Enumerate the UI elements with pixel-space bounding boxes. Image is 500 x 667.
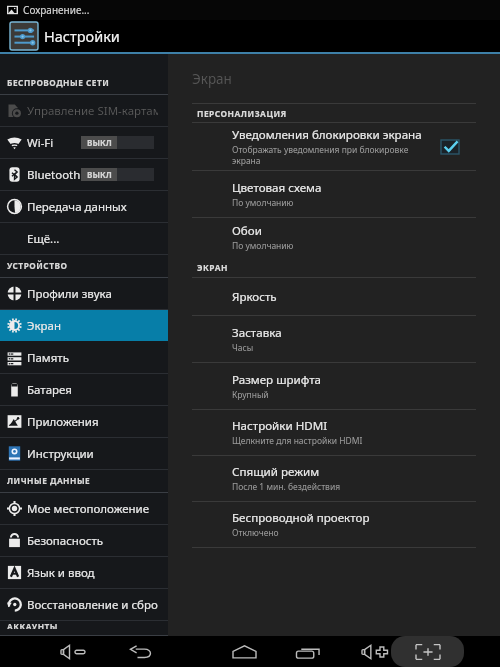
staticText: Сохранение... <box>23 3 90 17</box>
staticText: Передача данных <box>27 199 158 215</box>
button[interactable]: Screenshot <box>391 636 464 667</box>
staticText: Заставка <box>232 325 282 341</box>
staticText: Спящий режим <box>232 464 320 480</box>
button[interactable]: Обои <box>168 218 500 257</box>
button[interactable]: Память <box>0 342 168 374</box>
button[interactable]: Home <box>222 636 267 667</box>
staticText: Отображать уведомления при блокировке эк… <box>232 144 409 166</box>
staticText: По умолчанию <box>232 197 294 209</box>
staticText: ВЫКЛ <box>87 169 112 180</box>
staticText: Обои <box>232 223 262 239</box>
button[interactable]: Профили звука <box>0 278 168 310</box>
button[interactable]: Передача данных <box>0 191 168 223</box>
staticText: Настройки HDMI <box>232 418 328 434</box>
button[interactable]: Батарея <box>0 374 168 406</box>
button[interactable]: Recent apps <box>286 636 330 667</box>
staticText: Wi-Fi <box>27 135 158 151</box>
staticText: Размер шрифта <box>232 372 322 388</box>
staticText: Восстановление и сброс <box>27 597 158 613</box>
staticText: УСТРОЙСТВО <box>7 260 68 271</box>
staticText: Инструкции <box>27 446 158 462</box>
staticText: Яркость <box>232 289 277 305</box>
staticText: Приложения <box>27 414 158 430</box>
staticText: Часы <box>232 342 254 354</box>
button[interactable]: Мое местоположение <box>0 493 168 525</box>
staticText: Профили звука <box>27 286 158 302</box>
staticText: Батарея <box>27 382 158 398</box>
button[interactable]: Заставка <box>168 316 500 363</box>
staticText: ЭКРАН <box>197 262 228 273</box>
button[interactable]: Back <box>120 636 162 667</box>
staticText: ЛИЧНЫЕ ДАННЫЕ <box>7 475 91 486</box>
button[interactable]: Яркость <box>168 278 500 316</box>
staticText: БЕСПРОВОДНЫЕ СЕТИ <box>7 77 110 88</box>
staticText: Мое местоположение <box>27 501 158 517</box>
staticText: Щелкните для настройки HDMI <box>232 435 363 447</box>
staticText: После 1 мин. бездействия <box>232 481 341 493</box>
button[interactable]: Volume up <box>352 636 398 667</box>
staticText: Ещё... <box>27 231 158 247</box>
staticText: Bluetooth <box>27 167 158 183</box>
staticText: Уведомления блокировки экрана <box>232 127 422 143</box>
staticText: Настройки <box>44 26 120 46</box>
staticText: Отключено <box>232 527 279 539</box>
button[interactable]: Управление SIM-картами <box>0 95 168 127</box>
staticText: Безопасность <box>27 533 158 549</box>
button[interactable]: Восстановление и сброс <box>0 589 168 621</box>
button[interactable]: Приложения <box>0 406 168 438</box>
button[interactable]: Цветовая схема <box>168 171 500 218</box>
staticText: Экран <box>192 70 232 88</box>
staticText: Память <box>27 350 158 366</box>
button[interactable]: Экран <box>0 310 168 342</box>
button[interactable]: Ещё... <box>0 223 168 255</box>
staticText: ПЕРСОНАЛИЗАЦИЯ <box>197 108 287 119</box>
button[interactable]: Уведомления блокировки экрана <box>168 123 500 171</box>
button[interactable]: Volume down <box>51 636 96 667</box>
staticText: АККАУНТЫ <box>7 621 58 629</box>
button[interactable]: Настройки HDMI <box>168 410 500 456</box>
staticText: Экран <box>27 318 158 334</box>
staticText: Управление SIM-картами <box>27 103 158 119</box>
staticText: Язык и ввод <box>27 565 158 581</box>
button[interactable]: Безопасность <box>0 525 168 557</box>
staticText: ВЫКЛ <box>87 137 112 148</box>
button[interactable]: Размер шрифта <box>168 363 500 410</box>
staticText: По умолчанию <box>232 240 294 252</box>
staticText: Беспроводной проектор <box>232 510 370 526</box>
button[interactable]: Инструкции <box>0 438 168 470</box>
button[interactable]: Язык и ввод <box>0 557 168 589</box>
staticText: Крупный <box>232 389 269 401</box>
button[interactable]: Wi-Fi <box>0 127 168 159</box>
button[interactable]: Спящий режим <box>168 456 500 502</box>
button[interactable]: Беспроводной проектор <box>168 502 500 548</box>
button[interactable]: Bluetooth <box>0 159 168 191</box>
staticText: Цветовая схема <box>232 180 322 196</box>
